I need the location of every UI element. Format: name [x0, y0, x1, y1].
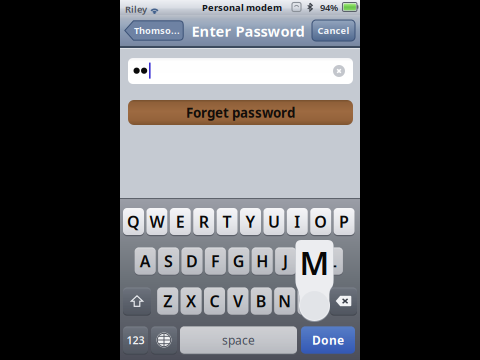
button[interactable]: H: [252, 247, 273, 274]
staticText: Z: [163, 290, 172, 312]
button[interactable]: E: [170, 208, 191, 235]
button[interactable]: Z: [157, 287, 178, 314]
button[interactable]: Delete: [330, 287, 357, 314]
staticText: Forget password: [186, 104, 295, 121]
button[interactable]: O: [310, 208, 331, 235]
staticText: L: [328, 250, 337, 272]
staticText: U: [268, 211, 280, 232]
staticText: Q: [127, 211, 140, 232]
button[interactable]: B: [251, 287, 272, 314]
staticText: A: [140, 250, 151, 272]
staticText: B: [256, 290, 267, 312]
staticText: Cancel: [317, 24, 349, 37]
staticText: X: [186, 290, 196, 312]
staticText: Thomso...: [134, 24, 180, 37]
staticText: J: [283, 250, 288, 272]
button[interactable]: A: [135, 247, 156, 274]
staticText: P: [339, 211, 349, 232]
button[interactable]: D: [181, 247, 202, 274]
staticText: O: [314, 211, 327, 232]
staticText: V: [233, 290, 243, 312]
staticText: space: [222, 332, 255, 348]
staticText: N: [278, 290, 291, 312]
button[interactable]: Done: [301, 326, 355, 353]
button[interactable]: N: [274, 287, 295, 314]
staticText: C: [209, 290, 219, 312]
staticText: Enter Password: [191, 21, 304, 41]
button[interactable]: R: [193, 208, 214, 235]
staticText: F: [211, 250, 220, 272]
button[interactable]: G: [228, 247, 249, 274]
staticText: Done: [312, 332, 344, 348]
button[interactable]: I: [287, 208, 308, 235]
button[interactable]: S: [158, 247, 179, 274]
button[interactable]: Switch keyboard: [151, 326, 177, 353]
staticText: M: [299, 241, 329, 284]
button[interactable]: Cancel: [312, 20, 355, 41]
button[interactable]: F: [205, 247, 226, 274]
staticText: S: [164, 250, 173, 272]
button[interactable]: Clear text: [333, 65, 345, 77]
staticText: K: [304, 250, 314, 272]
button[interactable]: U: [263, 208, 284, 235]
staticText: W: [149, 211, 164, 232]
staticText: T: [223, 211, 232, 232]
staticText: Riley: [125, 3, 147, 15]
staticText: Personal modem: [202, 1, 282, 14]
button[interactable]: P: [334, 208, 355, 235]
staticText: R: [199, 211, 209, 232]
staticText: E: [176, 211, 185, 232]
staticText: I: [294, 211, 300, 232]
button[interactable]: J: [275, 247, 296, 274]
button[interactable]: K: [298, 247, 319, 274]
button[interactable]: M: [298, 287, 319, 314]
button[interactable]: T: [217, 208, 238, 235]
button[interactable]: L: [322, 247, 343, 274]
button[interactable]: Q: [123, 208, 144, 235]
staticText: Y: [245, 211, 255, 232]
button[interactable]: 123: [123, 326, 148, 353]
button[interactable]: W: [146, 208, 167, 235]
button[interactable]: C: [204, 287, 225, 314]
button[interactable]: V: [227, 287, 248, 314]
staticText: G: [233, 250, 245, 272]
button[interactable]: Shift: [123, 287, 151, 314]
staticText: 94%: [320, 1, 338, 14]
staticText: D: [186, 250, 198, 272]
button[interactable]: Forget password: [128, 100, 353, 125]
button[interactable]: X: [181, 287, 202, 314]
staticText: H: [256, 250, 268, 272]
button[interactable]: Thomso...: [124, 20, 184, 41]
staticText: M: [301, 290, 316, 312]
button[interactable]: Y: [240, 208, 261, 235]
staticText: 123: [126, 333, 144, 347]
button[interactable]: space: [180, 326, 297, 353]
